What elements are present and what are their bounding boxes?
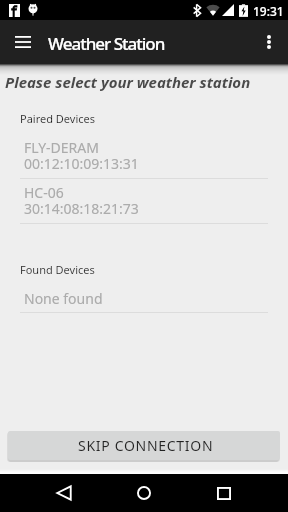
button[interactable]: None found (0, 284, 288, 312)
staticText: Please select your weather station (5, 72, 251, 92)
staticText: Found Devices (20, 262, 95, 277)
staticText: SKIP CONNECTION (78, 436, 214, 455)
button[interactable]: FLY-DERAM (0, 134, 288, 178)
button[interactable]: More options (256, 29, 282, 55)
staticText: HC-06 (24, 183, 64, 202)
staticText: None found (24, 289, 103, 308)
button[interactable]: SKIP CONNECTION (8, 431, 280, 460)
button[interactable]: Open navigation menu (10, 29, 36, 55)
button[interactable]: Home (126, 474, 162, 512)
staticText: FLY-DERAM (24, 138, 99, 157)
staticText: 19:31 (253, 3, 284, 19)
button[interactable]: HC-06 (0, 179, 288, 223)
button[interactable]: Back (46, 474, 82, 512)
staticText: 30:14:08:18:21:73 (24, 199, 139, 218)
staticText: Paired Devices (20, 111, 96, 126)
button[interactable]: Recent apps (206, 474, 242, 512)
staticText: 00:12:10:09:13:31 (24, 154, 139, 173)
staticText: Weather Station (48, 32, 165, 55)
